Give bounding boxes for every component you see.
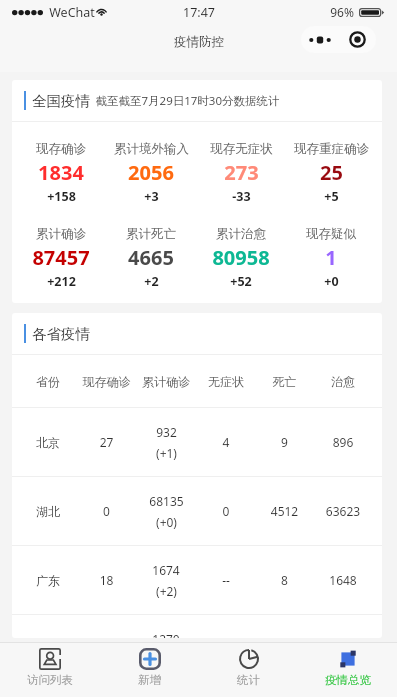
staticText: +2	[144, 273, 159, 290]
staticText: 63623	[312, 503, 374, 519]
staticText: 累计境外输入	[114, 141, 189, 157]
button[interactable]: 上海	[20, 615, 374, 638]
staticText: 87457	[32, 244, 90, 271]
button[interactable]: 疫情总览	[298, 643, 397, 697]
staticText: 273	[224, 159, 259, 186]
staticText: 1	[325, 244, 337, 271]
staticText: 现存确诊	[36, 141, 86, 157]
staticText: 2056	[128, 159, 174, 186]
button[interactable]: 新增	[100, 643, 199, 697]
staticText: 68135	[149, 493, 184, 509]
button[interactable]: More	[301, 26, 338, 53]
staticText: (+1)	[156, 445, 177, 461]
button[interactable]: Close	[338, 26, 376, 53]
staticText: 疫情总览	[325, 673, 371, 687]
staticText: 治愈	[312, 374, 374, 389]
staticText: +158	[47, 188, 76, 205]
staticText: 4	[195, 434, 257, 450]
staticText: 1648	[312, 572, 374, 588]
staticText: -33	[232, 188, 251, 205]
staticText: 全国疫情	[32, 92, 90, 110]
staticText: 18	[76, 572, 137, 588]
button[interactable]: 统计	[199, 643, 298, 697]
staticText: 1834	[38, 159, 84, 186]
staticText: 累计治愈	[216, 226, 266, 242]
staticText: 累计确诊	[137, 374, 195, 389]
staticText: 北京	[20, 435, 76, 450]
staticText: 疫情防控	[174, 34, 224, 50]
staticText: 广东	[20, 573, 76, 588]
staticText: 9	[257, 434, 312, 450]
staticText: 896	[312, 434, 374, 450]
staticText: +0	[324, 273, 339, 290]
staticText: WeChat	[49, 4, 95, 21]
button[interactable]: 湖北	[20, 477, 374, 545]
staticText: 累计死亡	[126, 226, 176, 242]
staticText: 1674	[152, 562, 180, 578]
staticText: 死亡	[257, 374, 312, 389]
staticText: 现存无症状	[210, 141, 273, 157]
staticText: 省份	[20, 374, 76, 389]
staticText: 0	[76, 503, 137, 519]
button[interactable]: 访问列表	[0, 643, 100, 697]
staticText: (+0)	[156, 514, 177, 530]
staticText: --	[195, 572, 257, 588]
staticText: 8	[257, 572, 312, 588]
staticText: 932	[156, 424, 177, 440]
staticText: 累计确诊	[36, 226, 86, 242]
staticText: 现存重症确诊	[294, 141, 369, 157]
button[interactable]: 广东	[20, 546, 374, 614]
button[interactable]: 北京	[20, 408, 374, 476]
staticText: 4512	[257, 503, 312, 519]
staticText: 截至截至7月29日17时30分数据统计	[95, 93, 280, 109]
staticText: 80958	[212, 244, 270, 271]
staticText: 现存疑似	[306, 226, 356, 242]
staticText: 访问列表	[27, 673, 73, 687]
staticText: 4665	[128, 244, 174, 271]
staticText: +212	[47, 273, 76, 290]
staticText: 17:47	[183, 4, 215, 21]
staticText: 27	[76, 434, 137, 450]
staticText: 现存确诊	[76, 374, 137, 389]
staticText: 96%	[330, 4, 354, 20]
staticText: +5	[324, 188, 339, 205]
staticText: 0	[195, 503, 257, 519]
staticText: 湖北	[20, 504, 76, 519]
staticText: 各省疫情	[32, 325, 90, 343]
staticText: +52	[230, 273, 252, 290]
staticText: +3	[144, 188, 159, 205]
staticText: 1270	[152, 631, 180, 638]
staticText: 25	[320, 159, 343, 186]
staticText: (+2)	[156, 583, 177, 599]
staticText: 无症状	[195, 374, 257, 389]
staticText: 统计	[237, 673, 260, 687]
staticText: 新增	[138, 673, 161, 687]
